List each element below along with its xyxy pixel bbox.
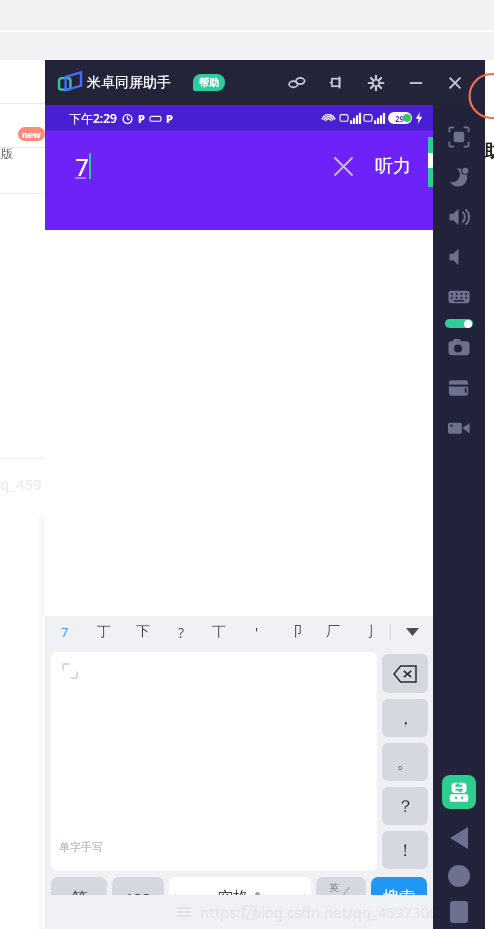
button[interactable]: 听力 [369,155,417,178]
staticText: ， [397,708,414,729]
button[interactable]: 123 [112,877,164,919]
staticText: 下 [136,623,150,641]
button[interactable]: 帮助 [193,74,225,91]
button[interactable]: 英 [316,877,366,919]
button[interactable]: Home [236,899,262,925]
staticText: 助力 [484,140,494,163]
button[interactable]: Assistant [442,775,476,809]
button[interactable]: ！ [382,831,428,869]
staticText: new [22,128,41,140]
button[interactable]: Volume down [437,237,481,277]
staticText: 中 [342,899,355,915]
button[interactable]: ' [238,616,276,648]
button[interactable]: 符 [51,877,107,919]
staticText: 亅 [364,623,378,641]
button[interactable]: Back [291,899,317,925]
staticText: 丅 [212,623,226,641]
staticText: https://blog.csdn.net/qq_45973003 [200,902,447,922]
button[interactable]: Close [442,70,468,96]
button[interactable]: Recents [171,899,197,925]
staticText: 下午2:29 [69,110,117,126]
button[interactable] [445,319,473,328]
staticText: 帮助 [199,76,219,89]
staticText: ！ [397,840,414,861]
staticText: 卩 [288,623,302,641]
staticText: 版 [1,146,13,161]
staticText: 搜索 [383,888,415,908]
button[interactable]: Settings [363,70,389,96]
button[interactable]: ? [162,616,200,648]
button[interactable]: Do not disturb [437,157,481,197]
staticText: 厂 [326,623,340,641]
button[interactable]: Volume up [437,197,481,237]
button[interactable]: 空格 [169,877,311,919]
staticText: 7 [75,150,89,183]
button[interactable]: Minimize [403,70,429,96]
staticText: 符 [71,888,88,909]
staticText: q_459 [0,474,42,494]
staticText: P [138,111,145,126]
button[interactable]: Screenshot [437,117,481,157]
staticText: 单字手写 [59,840,103,854]
button[interactable]: 丅 [200,616,238,648]
button[interactable]: ， [382,699,428,737]
staticText: ' [255,623,259,642]
button[interactable]: 丁 [84,616,123,648]
button[interactable]: 7 [45,616,84,648]
button[interactable]: del [382,654,428,693]
staticText: 听力 [375,155,411,178]
button[interactable]: Pin [324,70,350,96]
staticText: 英 [329,881,339,894]
button[interactable]: Camera [437,328,481,368]
button[interactable]: Home [448,865,470,887]
staticText: ？ [397,796,414,817]
staticText: 123 [125,888,151,908]
button[interactable]: More candidates [391,616,433,648]
button[interactable]: 厂 [314,616,352,648]
staticText: P [166,111,173,126]
staticText: 米卓同屏助手 [87,74,171,92]
staticText: 丁 [97,623,111,641]
button[interactable]: 亅 [352,616,390,648]
button[interactable]: 卩 [276,616,314,648]
button[interactable]: Back [444,823,474,853]
staticText: ? [178,623,185,642]
staticText: 空格 [217,888,249,908]
button[interactable]: Recents [450,901,468,923]
button[interactable]: Keyboard [437,277,481,317]
staticText: 29 [395,113,405,124]
button[interactable]: File transfer [437,368,481,408]
button[interactable]: ？ [382,787,428,825]
staticText: 7 [61,623,69,641]
button[interactable]: Collapse [482,70,494,96]
staticText: 。 [397,752,414,773]
button[interactable]: Link [284,70,310,96]
button[interactable]: Record video [437,408,481,448]
button[interactable]: 下 [123,616,162,648]
button[interactable]: 。 [382,743,428,781]
button[interactable]: Clear [323,146,363,186]
button[interactable]: 搜索 [371,877,427,919]
